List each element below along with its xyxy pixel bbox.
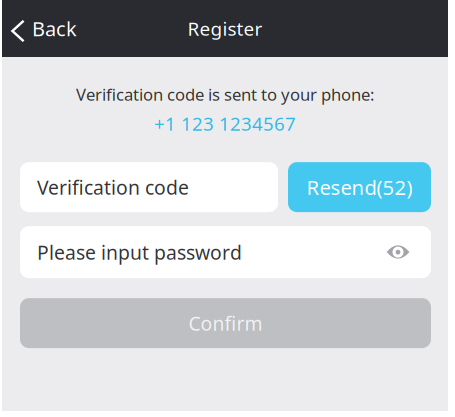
staticText: Back <box>32 15 77 42</box>
staticText: +1 123 1234567 <box>154 111 296 136</box>
staticText: Resend(52) <box>306 173 412 201</box>
staticText: Verification code is sent to your phone: <box>76 83 374 106</box>
staticText: Register <box>187 16 262 41</box>
button[interactable]: Show password <box>380 230 416 274</box>
staticText: Please input password <box>37 239 242 265</box>
staticText: Verification code <box>37 174 189 200</box>
button[interactable]: Confirm <box>20 298 431 348</box>
staticText: Confirm <box>188 310 262 336</box>
button[interactable]: Resend(52) <box>288 162 431 212</box>
button[interactable]: Back <box>2 0 91 57</box>
